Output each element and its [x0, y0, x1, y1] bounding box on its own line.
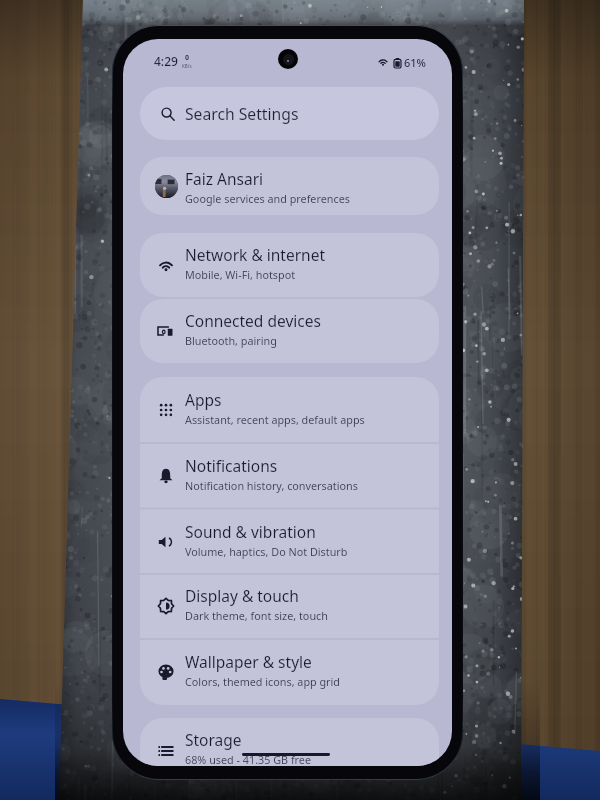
staticText: Colors, themed icons, app grid — [185, 674, 341, 689]
staticText: Assistant, recent apps, default apps — [185, 412, 365, 427]
button[interactable]: Connected devices — [140, 299, 439, 362]
button[interactable]: Network & internet — [140, 233, 439, 296]
button[interactable]: Apps — [140, 377, 439, 443]
staticText: 4:29 — [154, 53, 178, 69]
staticText: Display & touch — [185, 585, 299, 606]
staticText: 61% — [404, 55, 426, 70]
staticText: 68% used - 41.35 GB free — [185, 752, 312, 766]
staticText: Notifications — [185, 455, 278, 476]
button[interactable]: Storage — [140, 718, 439, 766]
staticText: Connected devices — [185, 310, 321, 331]
button[interactable]: Sound & vibration — [140, 509, 439, 575]
staticText: Search Settings — [185, 103, 299, 124]
staticText: Volume, haptics, Do Not Disturb — [185, 544, 348, 559]
staticText: Faiz Ansari — [185, 168, 264, 189]
staticText: Dark theme, font size, touch — [185, 608, 328, 623]
button[interactable]: Faiz Ansari — [140, 157, 439, 214]
staticText: Storage — [185, 729, 242, 750]
staticText: 0 — [185, 53, 190, 63]
staticText: Notification history, conversations — [185, 478, 358, 493]
staticText: Network & internet — [185, 244, 325, 265]
staticText: Wallpaper & style — [185, 651, 312, 672]
staticText: Sound & vibration — [185, 521, 316, 542]
staticText: KB/s — [182, 63, 192, 69]
staticText: Mobile, Wi-Fi, hotspot — [185, 267, 296, 282]
button[interactable]: Notifications — [140, 443, 439, 509]
button[interactable]: Display & touch — [140, 573, 439, 639]
staticText: Bluetooth, pairing — [185, 333, 277, 348]
button[interactable]: Wallpaper & style — [140, 639, 439, 705]
button[interactable]: Search Settings — [140, 87, 439, 140]
staticText: Apps — [185, 389, 222, 410]
staticText: Google services and preferences — [185, 191, 350, 206]
